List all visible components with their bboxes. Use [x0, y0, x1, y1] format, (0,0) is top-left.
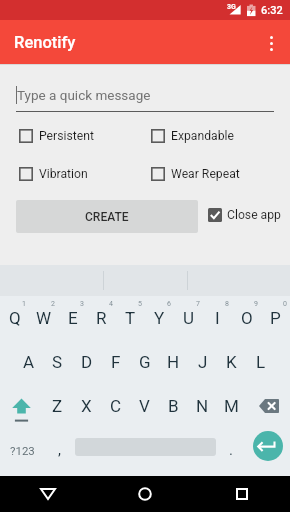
staticText: 7	[196, 300, 200, 308]
button[interactable]: Z	[43, 384, 72, 428]
staticText: M	[224, 396, 239, 416]
button[interactable]: H	[159, 340, 188, 384]
staticText: 5	[138, 300, 142, 308]
button[interactable]: .	[218, 428, 244, 472]
button[interactable]: M	[217, 384, 246, 428]
staticText: W	[36, 308, 52, 328]
staticText: Expandable	[171, 129, 234, 143]
staticText: C	[110, 396, 122, 416]
staticText: 3	[80, 300, 84, 308]
staticText: Wear Repeat	[171, 167, 240, 181]
staticText: H	[167, 352, 180, 372]
button[interactable]: F	[101, 340, 130, 384]
staticText: O	[241, 308, 253, 328]
button[interactable]: U	[174, 296, 203, 340]
button[interactable]: Wear Repeat	[151, 167, 244, 181]
staticText: G	[139, 352, 151, 372]
staticText: 4	[109, 300, 113, 308]
button[interactable]: Q	[0, 296, 29, 340]
button[interactable]: S	[43, 340, 72, 384]
button[interactable]: D	[72, 340, 101, 384]
button[interactable]: E	[58, 296, 87, 340]
staticText: 9	[254, 300, 258, 308]
staticText: I	[215, 308, 220, 328]
staticText: Renotify	[14, 33, 76, 52]
staticText: 6	[167, 300, 171, 308]
staticText: 1	[22, 300, 26, 308]
button[interactable]: V	[130, 384, 159, 428]
button[interactable]: X	[72, 384, 101, 428]
staticText: U	[183, 308, 195, 328]
staticText: ,	[58, 441, 61, 459]
staticText: Vibration	[39, 167, 88, 181]
button[interactable]: W	[29, 296, 58, 340]
button[interactable]: Expandable	[151, 129, 238, 143]
button[interactable]: ,	[46, 428, 72, 472]
button[interactable]: Back	[0, 476, 96, 512]
button[interactable]: ?123	[0, 428, 46, 472]
staticText: A	[23, 352, 35, 372]
staticText: V	[139, 396, 150, 416]
button[interactable]: Shift	[0, 384, 43, 428]
staticText: ?123	[10, 444, 35, 457]
button[interactable]: B	[159, 384, 188, 428]
button[interactable]: Persistent	[19, 129, 98, 143]
staticText: X	[81, 396, 92, 416]
button[interactable]: Vibration	[19, 167, 92, 181]
staticText: 6:32	[261, 4, 283, 17]
staticText: R	[96, 308, 107, 328]
button[interactable]: More options	[250, 22, 290, 62]
button[interactable]: N	[188, 384, 217, 428]
button[interactable]: Enter	[253, 431, 283, 461]
staticText: L	[256, 352, 266, 372]
staticText: T	[125, 308, 136, 328]
button[interactable]: O	[232, 296, 261, 340]
button[interactable]: R	[87, 296, 116, 340]
button[interactable]: Y	[145, 296, 174, 340]
staticText: B	[168, 396, 179, 416]
button[interactable]: CREATE	[16, 200, 198, 233]
staticText: Q	[9, 308, 21, 328]
staticText: 8	[225, 300, 229, 308]
staticText: 2	[51, 300, 55, 308]
staticText: .	[229, 441, 233, 459]
button[interactable]: P	[261, 296, 290, 340]
staticText: E	[68, 308, 78, 328]
button[interactable]: Home	[96, 476, 193, 512]
button[interactable]: L	[246, 340, 275, 384]
button[interactable]: J	[188, 340, 217, 384]
button[interactable]: Close app	[208, 208, 281, 222]
staticText: Z	[52, 396, 63, 416]
button[interactable]: I	[203, 296, 232, 340]
staticText: Type a quick message	[17, 87, 151, 103]
staticText: S	[52, 352, 63, 372]
staticText: 3G	[227, 3, 236, 11]
staticText: Close app	[227, 208, 281, 222]
button[interactable]: C	[101, 384, 130, 428]
staticText: N	[196, 396, 209, 416]
button[interactable]: Recents	[193, 476, 290, 512]
staticText: P	[270, 308, 281, 328]
button[interactable]: G	[130, 340, 159, 384]
button[interactable]: T	[116, 296, 145, 340]
staticText: CREATE	[85, 210, 129, 224]
button[interactable]: K	[217, 340, 246, 384]
staticText: K	[226, 352, 237, 372]
staticText: J	[198, 352, 208, 372]
button[interactable]: A	[14, 340, 43, 384]
button[interactable]: Backspace	[246, 384, 290, 428]
staticText: D	[81, 352, 93, 372]
staticText: Y	[154, 308, 165, 328]
staticText: F	[111, 352, 121, 372]
staticText: Persistent	[39, 129, 94, 143]
staticText: 0	[283, 300, 287, 308]
